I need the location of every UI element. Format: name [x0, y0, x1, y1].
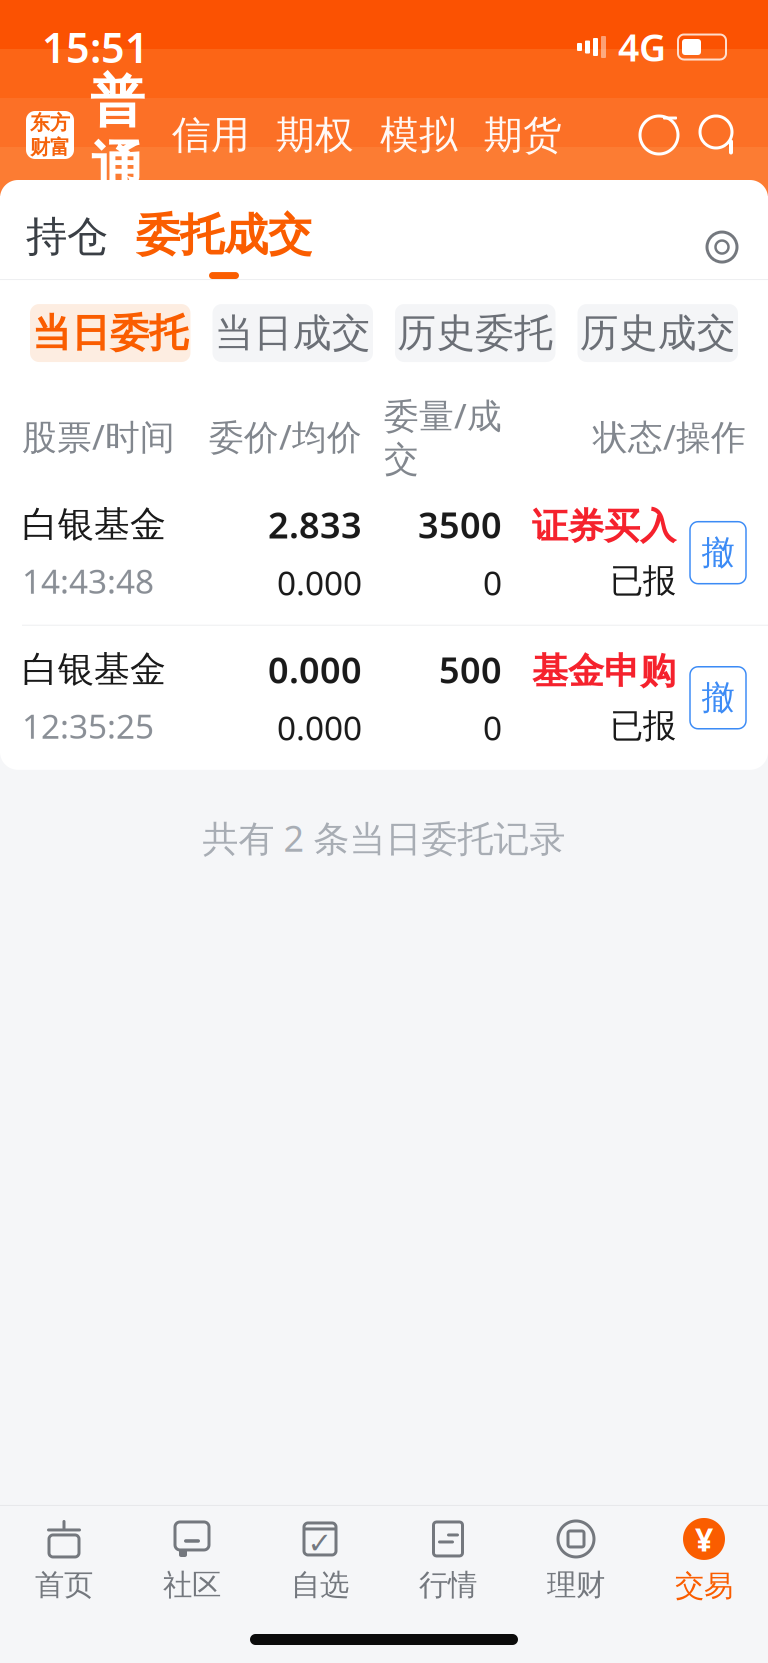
staticText: 0.000 — [277, 705, 362, 750]
staticText: 撤 — [701, 532, 734, 573]
button[interactable]: 历史委托 — [395, 304, 555, 362]
staticText: 委托成交 — [136, 208, 312, 262]
staticText: 4G — [618, 22, 666, 72]
button[interactable]: 当日委托 — [30, 304, 190, 362]
staticText: 证券买入 — [532, 504, 676, 548]
staticText: 0 — [483, 705, 502, 750]
staticText: 财富 — [30, 135, 70, 160]
button[interactable]: 设置 — [702, 227, 742, 267]
staticText: 共有 2 条当日委托记录 — [202, 814, 565, 862]
staticText: 当日委托 — [32, 309, 188, 357]
staticText: 0.000 — [268, 646, 362, 693]
staticText: 14:43:48 — [22, 559, 154, 603]
button[interactable]: 撤 — [690, 522, 746, 584]
staticText: 白银基金 — [22, 502, 166, 547]
staticText: 模拟 — [380, 111, 458, 159]
staticText: 交易 — [675, 1568, 733, 1604]
staticText: 普通 — [90, 68, 145, 202]
staticText: 已报 — [610, 560, 676, 601]
staticText: 理财 — [547, 1567, 605, 1603]
staticText: 期货 — [484, 111, 562, 159]
button[interactable]: 期货 — [471, 103, 575, 167]
button[interactable]: ¥ — [640, 1506, 768, 1614]
staticText: 0 — [483, 560, 502, 605]
button[interactable]: 社区 — [128, 1507, 256, 1613]
staticText: 持仓 — [26, 211, 108, 262]
staticText: 社区 — [163, 1567, 221, 1603]
button[interactable]: 东方财富 — [26, 111, 74, 159]
staticText: 东方 — [30, 110, 70, 135]
button[interactable]: 理财 — [512, 1507, 640, 1613]
staticText: 12:35:25 — [22, 704, 154, 748]
button[interactable]: 委托成交 — [108, 208, 312, 279]
staticText: 15:51 — [42, 20, 149, 74]
staticText: 委价/均价 — [209, 413, 362, 459]
button[interactable]: 刷新 — [636, 112, 682, 158]
button[interactable]: 期权 — [263, 103, 367, 167]
button[interactable]: 撤 — [690, 667, 746, 729]
staticText: 基金申购 — [532, 649, 676, 693]
staticText: 500 — [439, 646, 502, 693]
button[interactable]: 历史成交 — [577, 304, 738, 362]
button[interactable]: 信用 — [159, 103, 263, 167]
staticText: 行情 — [419, 1567, 477, 1603]
staticText: 当日成交 — [215, 309, 371, 357]
button[interactable]: ✓ — [256, 1507, 384, 1613]
staticText: 0.000 — [277, 560, 362, 605]
staticText: 委量/成交 — [384, 392, 502, 481]
staticText: 历史成交 — [580, 309, 736, 357]
button[interactable]: 持仓 — [26, 211, 108, 279]
staticText: 2.833 — [268, 501, 362, 548]
staticText: 信用 — [172, 111, 250, 159]
staticText: 股票/时间 — [22, 413, 175, 459]
staticText: 3500 — [418, 501, 502, 548]
staticText: 撤 — [701, 677, 734, 718]
staticText: ¥ — [695, 1518, 713, 1560]
staticText: 状态/操作 — [593, 413, 746, 459]
button[interactable]: 当日成交 — [212, 304, 373, 362]
staticText: 首页 — [35, 1567, 93, 1603]
staticText: 自选 — [291, 1567, 349, 1603]
button[interactable]: 模拟 — [367, 103, 471, 167]
staticText: 白银基金 — [22, 647, 166, 692]
staticText: 期权 — [276, 111, 354, 159]
button[interactable]: 行情 — [384, 1507, 512, 1613]
button[interactable]: 搜索 — [696, 112, 742, 158]
staticText: 历史委托 — [397, 309, 553, 357]
staticText: ✓ — [307, 1526, 332, 1560]
button[interactable]: 首页 — [0, 1507, 128, 1613]
staticText: 已报 — [610, 705, 676, 746]
